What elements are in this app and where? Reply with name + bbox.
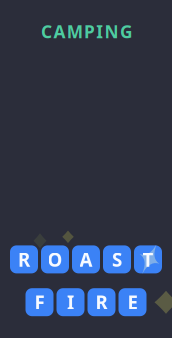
staticText: CAMPING [41,20,133,43]
staticText: T [142,247,153,272]
staticText: R [18,247,30,272]
staticText: R [95,290,107,315]
staticText: A [79,247,92,272]
staticText: I [67,290,74,315]
staticText: F [34,290,44,315]
staticText: E [127,290,137,315]
staticText: S [112,247,122,272]
staticText: O [47,247,62,272]
